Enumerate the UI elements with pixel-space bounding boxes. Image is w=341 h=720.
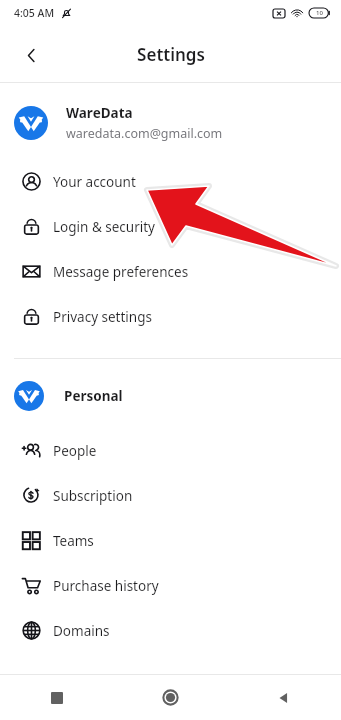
button[interactable]: Back [227, 675, 341, 720]
button[interactable]: Personal [0, 381, 341, 411]
staticText: People [53, 442, 97, 460]
button[interactable]: Your account [0, 159, 341, 204]
staticText: 10 [316, 9, 323, 17]
button[interactable]: Message preferences [0, 249, 341, 294]
staticText: Your account [53, 173, 136, 191]
button[interactable]: Purchase history [0, 563, 341, 608]
staticText: 4:05 AM [14, 6, 55, 20]
staticText: Privacy settings [53, 308, 152, 326]
staticText: Personal [64, 387, 123, 405]
button[interactable]: Subscription [0, 473, 341, 518]
button[interactable]: Domains [0, 608, 341, 653]
staticText: Login & security [53, 218, 155, 236]
staticText: waredata.com@gmail.com [66, 125, 223, 142]
button[interactable]: WareData [0, 102, 341, 144]
staticText: Teams [53, 532, 94, 550]
button[interactable]: Teams [0, 518, 341, 563]
button[interactable]: Recent apps [0, 675, 113, 720]
button[interactable]: Privacy settings [0, 294, 341, 339]
staticText: Domains [53, 622, 110, 640]
staticText: Subscription [53, 487, 133, 505]
staticText: WareData [66, 104, 133, 122]
button[interactable]: Login & security [0, 204, 341, 249]
staticText: Purchase history [53, 577, 159, 595]
staticText: Message preferences [53, 263, 189, 281]
staticText: Settings [137, 43, 205, 66]
button[interactable]: Back [10, 34, 52, 76]
button[interactable]: People [0, 428, 341, 473]
button[interactable]: Home [113, 675, 227, 720]
